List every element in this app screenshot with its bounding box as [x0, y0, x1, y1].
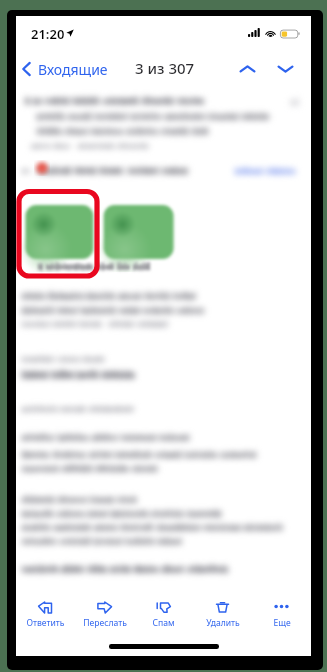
staticText: Ответить	[26, 617, 65, 629]
button[interactable]: Еще	[252, 596, 311, 629]
button[interactable]: Входящие	[19, 55, 111, 83]
button[interactable]: Удалить	[193, 596, 252, 629]
staticText: Входящие	[38, 60, 108, 79]
staticText: 21:20	[31, 25, 65, 43]
button[interactable]: Ответить	[16, 596, 75, 629]
staticText: Еще	[273, 617, 291, 629]
button[interactable]: Предыдущее письмо	[233, 55, 261, 83]
button[interactable]: Следующее письмо	[271, 55, 299, 83]
staticText: Удалить	[206, 617, 240, 629]
staticText: 3 из 307	[135, 58, 195, 78]
staticText: Спам	[152, 617, 175, 629]
button[interactable]: Спам	[134, 596, 193, 629]
staticText: Переслать	[83, 617, 127, 629]
button[interactable]: Переслать	[75, 596, 134, 629]
